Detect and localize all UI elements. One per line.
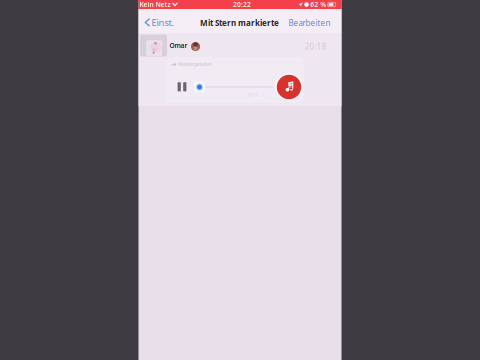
staticText: Omar: [169, 41, 187, 50]
staticText: Einst.: [151, 16, 174, 29]
staticText: Kein Netz: [139, 0, 170, 9]
button[interactable]: Einst.: [141, 12, 176, 33]
staticText: 20:22: [233, 0, 251, 9]
staticText: Mit Stern markierte: [200, 17, 279, 28]
button[interactable]: Bearbeiten: [286, 13, 333, 32]
staticText: 20:18: [304, 41, 326, 52]
staticText: 62 %: [310, 0, 326, 9]
button[interactable]: Wiedergabe pausieren: [175, 79, 189, 94]
staticText: Weitergeleitet: [178, 60, 212, 68]
staticText: Bearbeiten: [288, 17, 330, 28]
staticText: 0:11: [247, 91, 257, 99]
